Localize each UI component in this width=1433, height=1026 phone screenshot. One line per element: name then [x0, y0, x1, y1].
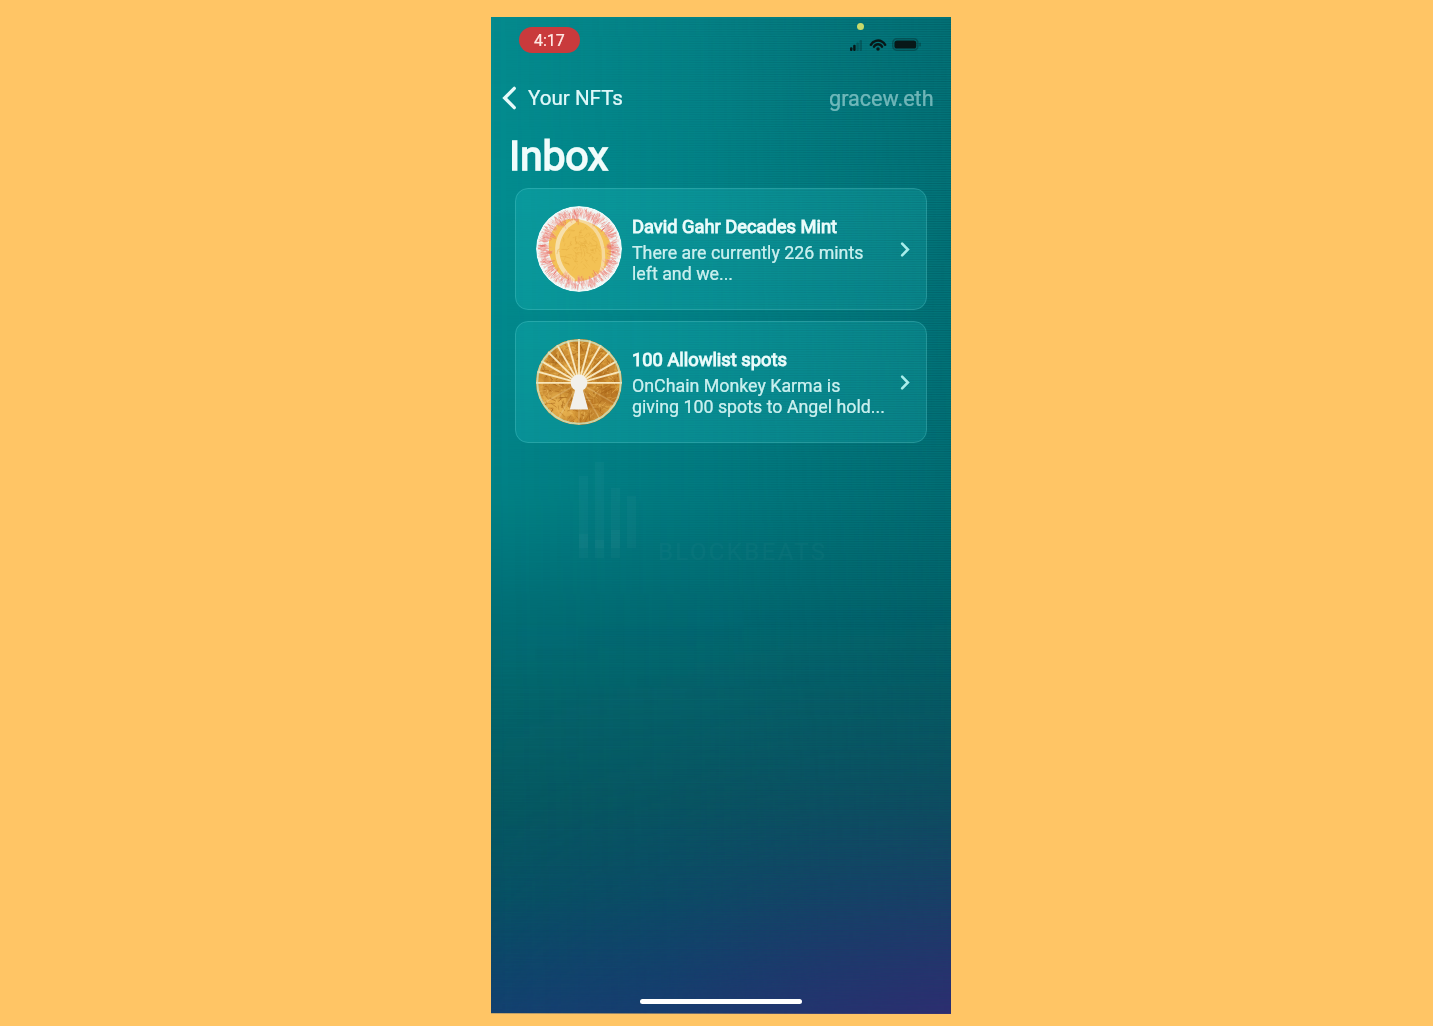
staticText: David Gahr Decades Mint [632, 216, 837, 237]
button[interactable]: 100 Allowlist spots [515, 321, 927, 443]
button[interactable]: gracew.eth [825, 83, 938, 114]
button[interactable]: David Gahr Decades Mint [515, 188, 927, 310]
staticText: 100 Allowlist spots [632, 349, 787, 370]
staticText: There are currently 226 mints left and w… [632, 242, 864, 285]
staticText: Your NFTs [528, 86, 623, 110]
other: Back [502, 86, 517, 110]
staticText: BLOCKBEATS [658, 538, 828, 566]
staticText: OnChain Monkey Karma is giving 100 spots… [632, 375, 885, 418]
staticText: 4:17 [534, 31, 565, 50]
staticText: Inbox [509, 132, 609, 180]
button[interactable]: Back [496, 81, 633, 115]
